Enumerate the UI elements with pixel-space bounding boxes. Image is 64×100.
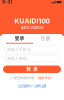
button[interactable]: Agree to terms <box>10 77 13 79</box>
staticText: 《服务协议》 <box>36 76 54 80</box>
button[interactable]: 登录 <box>6 33 33 44</box>
staticText: 忘记密码？ 立即注册 <box>18 84 46 88</box>
staticText: 登录 <box>14 35 24 41</box>
button[interactable]: 注册 <box>33 33 58 44</box>
staticText: 请输入手机号 <box>7 47 31 52</box>
staticText: 9:41 <box>2 0 12 5</box>
staticText: 注册 <box>40 35 50 41</box>
staticText: quick express <box>20 25 43 30</box>
staticText: 登 录 <box>26 66 38 72</box>
staticText: 我已阅读并同意 <box>14 76 35 80</box>
button[interactable]: 登 录 <box>3 65 61 73</box>
staticText: KUAIDI100 <box>14 17 49 25</box>
staticText: 请输入密码 <box>7 56 27 61</box>
button[interactable]: 忘记密码？ 立即注册 <box>18 84 46 88</box>
